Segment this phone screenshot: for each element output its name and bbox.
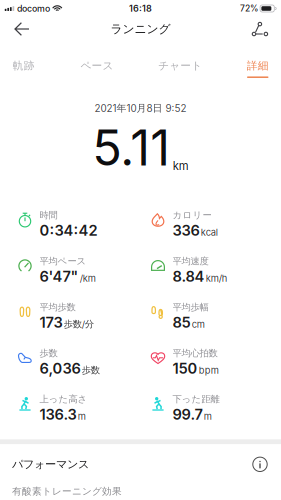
button[interactable]: ペース [80, 41, 114, 80]
staticText: cm [192, 319, 205, 330]
staticText: docomo [17, 3, 50, 14]
staticText: /km [80, 273, 96, 284]
staticText: 5.11 [92, 118, 170, 177]
staticText: 平均歩数 [39, 301, 75, 313]
staticText: 歩数 [39, 347, 57, 359]
staticText: チャート [158, 59, 202, 72]
staticText: 詳細 [247, 59, 269, 72]
staticText: 6,036 [39, 360, 80, 377]
button[interactable]: 情報 [249, 453, 271, 475]
staticText: bpm [199, 365, 219, 376]
staticText: 336 [172, 222, 199, 239]
staticText: m [204, 411, 212, 422]
staticText: 有酸素トレーニング効果 [12, 485, 122, 497]
button[interactable]: チャート [159, 41, 202, 80]
staticText: 軌跡 [13, 59, 35, 72]
staticText: ペース [80, 59, 113, 72]
staticText: 99.7 [172, 406, 202, 423]
staticText: 8.84 [172, 268, 204, 285]
staticText: ランニング [110, 21, 170, 36]
staticText: 6'47" [39, 268, 78, 285]
staticText: 平均歩幅 [172, 301, 208, 313]
staticText: 歩数 [82, 364, 100, 376]
staticText: 72% [240, 3, 258, 14]
staticText: 150 [172, 360, 197, 377]
staticText: 173 [39, 314, 62, 331]
staticText: 85 [172, 314, 190, 331]
staticText: 136.3 [39, 406, 76, 423]
staticText: カロリー [172, 209, 211, 221]
staticText: 下った距離 [172, 393, 219, 405]
staticText: km/h [206, 273, 228, 284]
staticText: 時間 [39, 209, 57, 221]
button[interactable]: 戻る [7, 17, 37, 41]
staticText: 2021年10月8日 9:52 [94, 102, 186, 114]
staticText: 歩数/分 [64, 318, 94, 330]
staticText: kcal [201, 227, 218, 238]
button[interactable]: 詳細 [247, 41, 268, 80]
staticText: 上った高さ [39, 393, 87, 405]
staticText: 16:18 [129, 3, 152, 14]
staticText: 平均心拍数 [172, 347, 217, 359]
button[interactable]: 共有 [245, 17, 275, 41]
staticText: m [78, 411, 86, 422]
staticText: 平均ペース [39, 255, 86, 267]
staticText: 0:34:42 [39, 222, 97, 239]
staticText: パフォーマンス [12, 457, 89, 471]
staticText: 平均速度 [172, 255, 208, 267]
staticText: km [173, 159, 189, 173]
button[interactable]: 軌跡 [12, 41, 35, 80]
